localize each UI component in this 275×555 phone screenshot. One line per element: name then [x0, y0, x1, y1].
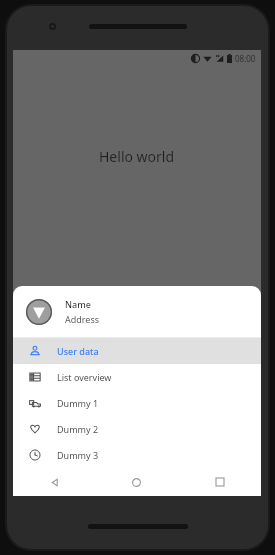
- staticText: Hello world: [99, 147, 175, 166]
- staticText: User data: [57, 345, 99, 357]
- staticText: Dummy 1: [57, 397, 99, 409]
- staticText: List overview: [57, 371, 112, 383]
- button[interactable]: Dummy 1: [13, 390, 261, 416]
- button[interactable]: Back: [13, 468, 95, 496]
- staticText: Address: [65, 313, 100, 325]
- button[interactable]: Home: [95, 468, 178, 496]
- button[interactable]: Name: [13, 286, 261, 337]
- staticText: Dummy 2: [57, 423, 99, 435]
- button[interactable]: Dummy 3: [13, 442, 261, 468]
- button[interactable]: List overview: [13, 364, 261, 390]
- button[interactable]: User data: [13, 338, 261, 364]
- button[interactable]: Recents: [178, 468, 261, 496]
- staticText: Name: [65, 298, 91, 310]
- button[interactable]: Dummy 2: [13, 416, 261, 442]
- staticText: Dummy 3: [57, 449, 99, 461]
- staticText: 08:00: [235, 53, 256, 64]
